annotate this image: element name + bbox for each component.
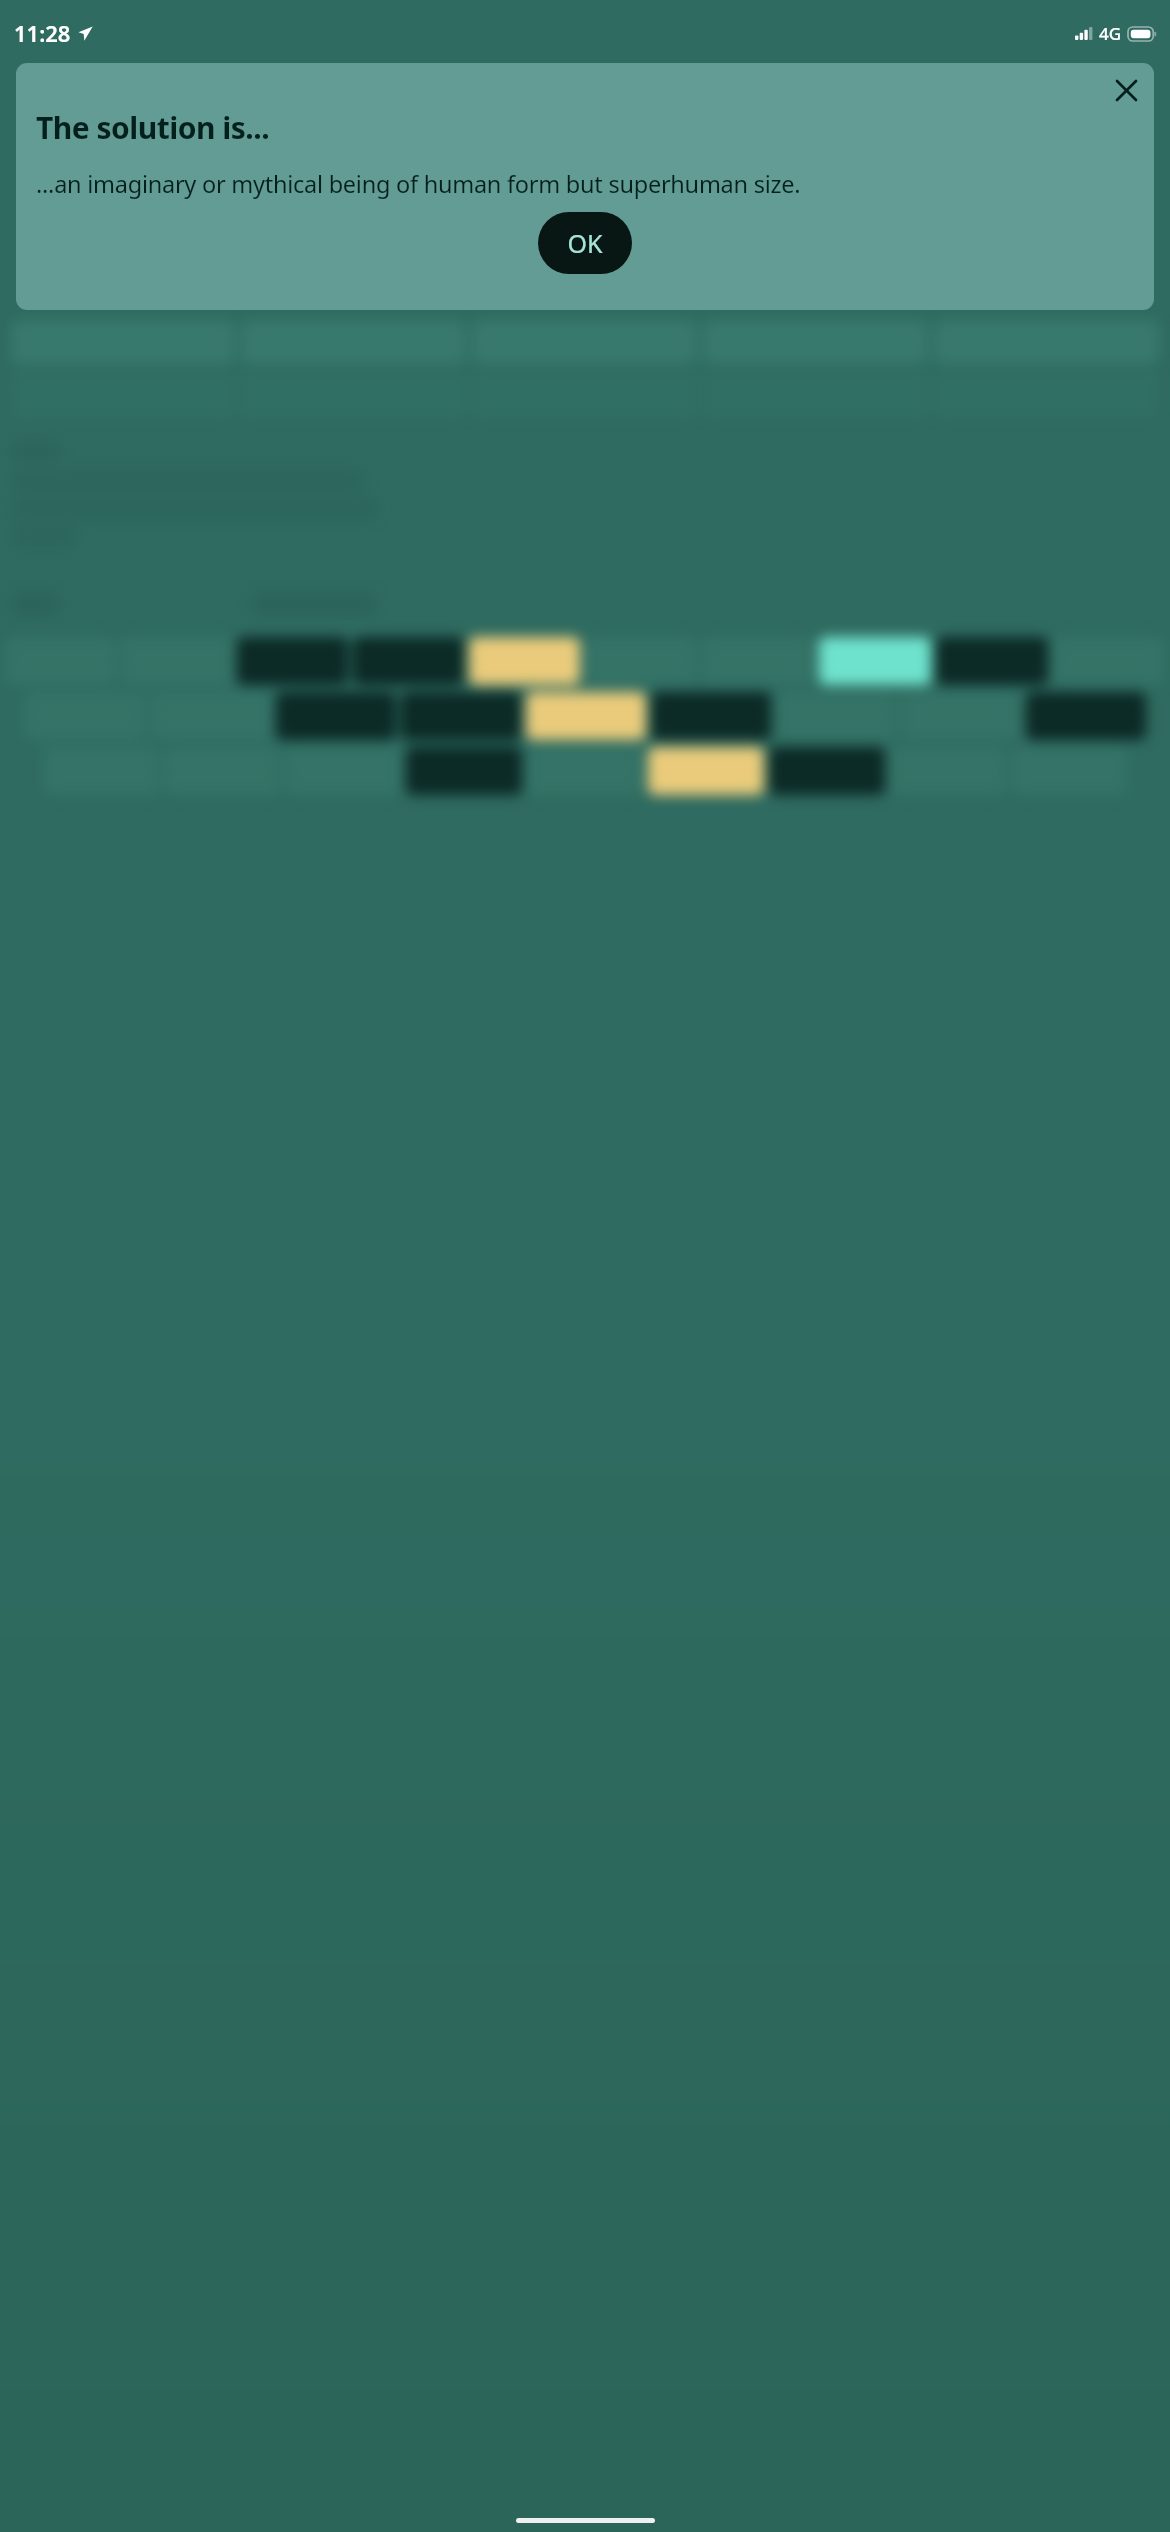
button[interactable]: Keyboard key: [769, 747, 885, 795]
button[interactable]: Keyboard key: [353, 637, 464, 685]
button[interactable]: Keyboard key: [776, 692, 896, 740]
button[interactable]: Keyboard key: [526, 692, 646, 740]
button[interactable]: OK: [538, 212, 632, 274]
button[interactable]: Keyboard key: [901, 692, 1021, 740]
button[interactable]: Keyboard key: [702, 637, 814, 685]
button[interactable]: Keyboard key: [1026, 692, 1146, 740]
button[interactable]: Keyboard key: [401, 692, 521, 740]
button[interactable]: Keyboard key: [651, 692, 771, 740]
staticText: 11:28: [14, 18, 71, 48]
staticText: ...an imaginary or mythical being of hum…: [36, 168, 801, 200]
button[interactable]: Keyboard key: [237, 637, 348, 685]
button[interactable]: Keyboard key: [527, 747, 643, 795]
staticText: The solution is...: [36, 107, 270, 148]
button[interactable]: Keyboard key: [406, 747, 522, 795]
button[interactable]: Keyboard key: [469, 637, 580, 685]
button[interactable]: Keyboard key: [819, 637, 931, 685]
button[interactable]: Keyboard key: [936, 637, 1048, 685]
button[interactable]: Keyboard key: [285, 747, 401, 795]
staticText: OK: [567, 226, 603, 260]
button[interactable]: Keyboard key: [1053, 637, 1165, 685]
button[interactable]: Keyboard key: [648, 747, 764, 795]
button[interactable]: Close: [1103, 67, 1150, 114]
staticText: 4G: [1099, 22, 1122, 45]
button[interactable]: Keyboard key: [585, 637, 697, 685]
button[interactable]: Keyboard key: [276, 692, 396, 740]
